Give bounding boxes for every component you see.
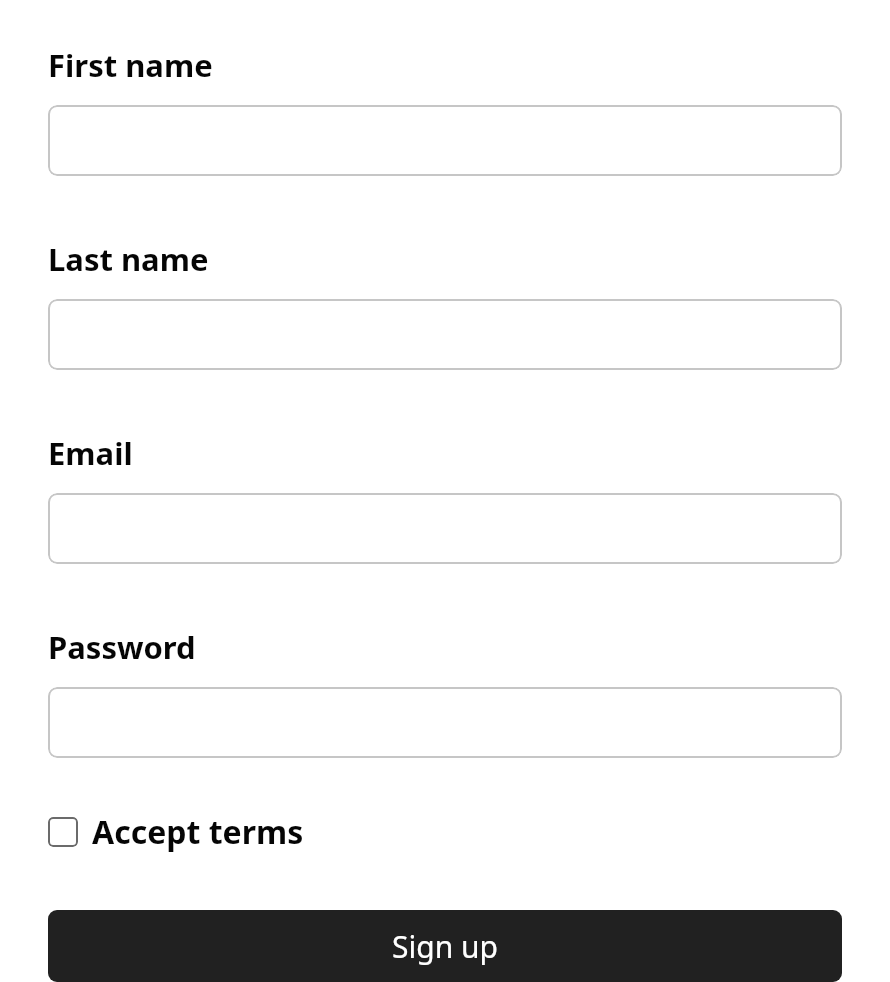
button[interactable]: Accept terms	[48, 804, 304, 860]
staticText: Sign up	[392, 926, 498, 967]
button[interactable]: Text input	[48, 493, 842, 564]
button[interactable]: Sign up	[48, 910, 842, 982]
staticText: Password	[48, 626, 196, 668]
button[interactable]: Text input	[48, 687, 842, 758]
staticText: First name	[48, 44, 213, 86]
staticText: Email	[48, 432, 133, 474]
staticText: Last name	[48, 238, 209, 280]
staticText: Accept terms	[92, 810, 304, 854]
button[interactable]: Text input	[48, 105, 842, 176]
button[interactable]: Text input	[48, 299, 842, 370]
